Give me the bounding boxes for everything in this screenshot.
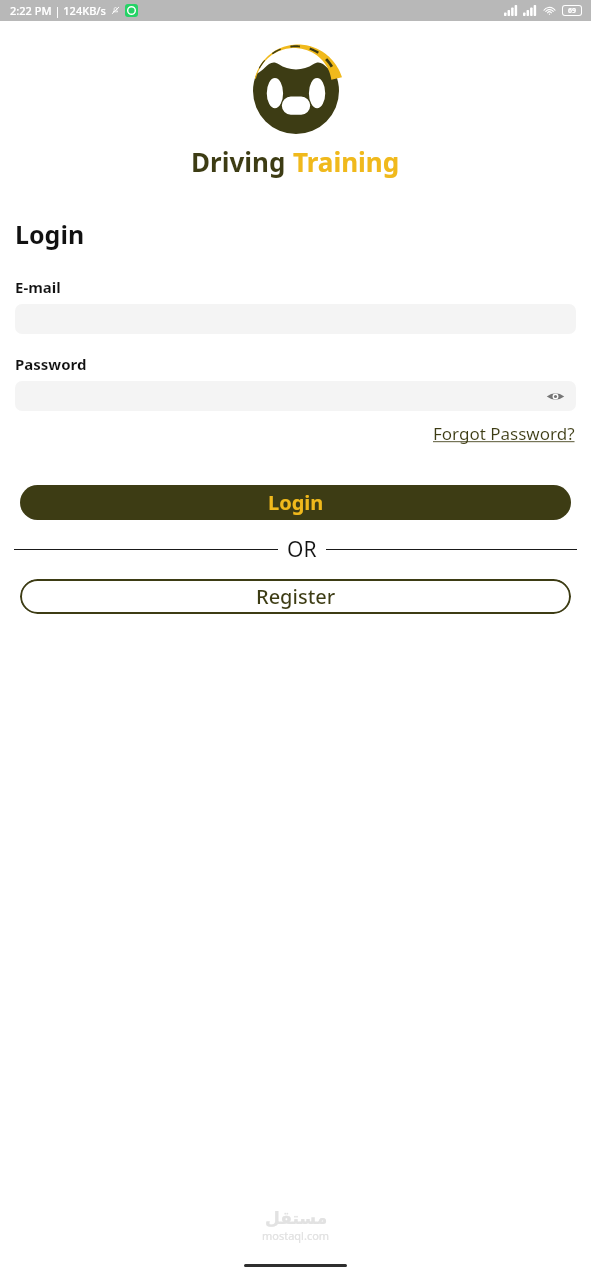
button[interactable]: Show password bbox=[542, 383, 568, 409]
staticText: 69 bbox=[568, 6, 577, 15]
staticText: E-mail bbox=[15, 277, 61, 297]
button[interactable]: Login bbox=[20, 485, 571, 520]
button[interactable]: Show password bbox=[15, 381, 576, 411]
staticText: Training bbox=[293, 144, 400, 179]
staticText: Register bbox=[256, 583, 336, 610]
button[interactable]: Forgot Password? bbox=[432, 420, 576, 447]
staticText: Password bbox=[15, 354, 87, 374]
button[interactable]: Register bbox=[20, 579, 571, 614]
staticText: Driving bbox=[191, 144, 293, 179]
staticText: 2:22 PM | 124KB/s bbox=[10, 3, 106, 18]
staticText: mostaql.com bbox=[262, 1228, 330, 1243]
staticText: OR bbox=[287, 535, 317, 564]
staticText: Login bbox=[268, 489, 324, 516]
staticText: Login bbox=[15, 217, 85, 251]
staticText: Forgot Password? bbox=[433, 422, 575, 445]
staticText: مستقل bbox=[265, 1208, 328, 1228]
